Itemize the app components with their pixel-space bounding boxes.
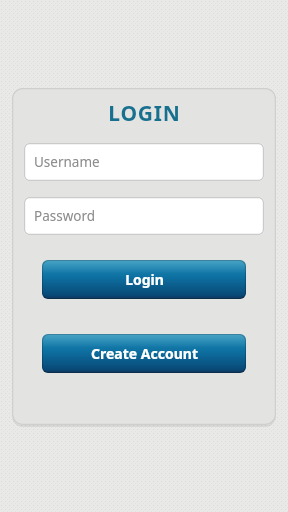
staticText: LOGIN [108,99,181,128]
button[interactable]: Password [24,197,264,235]
staticText: Login [125,270,164,289]
staticText: Username [34,153,100,171]
button[interactable]: Username [24,143,264,181]
staticText: Create Account [91,344,198,363]
button[interactable]: Create Account [42,334,246,373]
button[interactable]: Login [42,260,246,299]
staticText: Password [34,207,96,225]
